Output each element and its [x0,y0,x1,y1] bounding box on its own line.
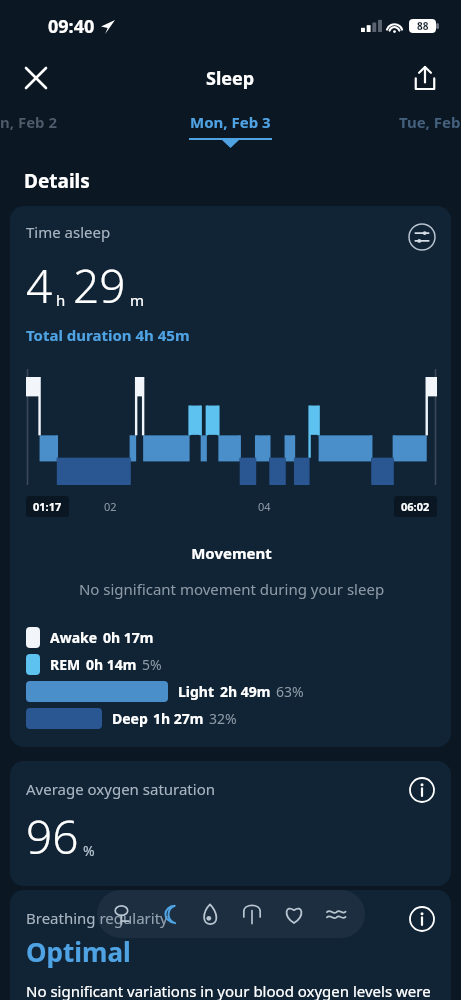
staticText: No significant variations in your blood … [26,981,437,1000]
staticText: m [130,290,145,310]
staticText: Average oxygen saturation [26,779,407,799]
staticText: Optimal [26,934,131,969]
button[interactable]: Stress [235,897,269,931]
staticText: 2h 49m [220,682,271,701]
staticText: 5% [142,655,162,674]
staticText: 01:17 [33,499,62,514]
button[interactable]: Sleep [151,897,185,931]
staticText: No significant movement during your slee… [26,579,437,599]
staticText: 09:40 [48,14,95,39]
staticText: 06:02 [401,499,430,514]
staticText: 88 [417,19,429,33]
button[interactable]: Close [14,56,58,100]
button[interactable]: Adjust sleep [407,222,437,252]
button[interactable]: Heart [277,897,311,931]
staticText: Mon, Feb 3 [190,112,271,132]
staticText: Total duration 4h 45m [26,325,190,345]
staticText: 63% [276,682,304,701]
staticText: Deep [112,709,148,728]
staticText: Movement [26,543,437,563]
staticText: 04 [258,499,271,514]
staticText: Light [178,682,215,701]
button[interactable]: Mon, Feb 3 [189,104,272,148]
button[interactable]: Calories [193,897,227,931]
button[interactable]: Share [403,56,447,100]
staticText: 29 [73,254,126,317]
staticText: Awake [50,628,98,647]
staticText: REM [50,655,81,674]
staticText: 0h 17m [103,628,154,647]
staticText: 4 [26,254,53,317]
staticText: h [56,290,66,310]
staticText: Details [24,168,90,194]
button[interactable]: Breathing [319,897,353,931]
staticText: 02 [104,499,117,514]
staticText: Tue, Feb [399,112,461,132]
button[interactable]: Info [407,904,437,934]
button[interactable]: Activity [109,897,143,931]
staticText: Breathing regularity [26,908,407,928]
button[interactable]: Info [407,775,437,805]
staticText: 0h 14m [86,655,137,674]
staticText: Time asleep [26,222,407,242]
button[interactable]: Total duration 4h 45m [26,325,190,345]
staticText: Sleep [206,66,255,91]
staticText: 96 [26,805,79,868]
staticText: % [83,841,95,860]
staticText: 32% [209,709,237,728]
staticText: 1h 27m [153,709,204,728]
staticText: n, Feb 2 [0,112,58,132]
